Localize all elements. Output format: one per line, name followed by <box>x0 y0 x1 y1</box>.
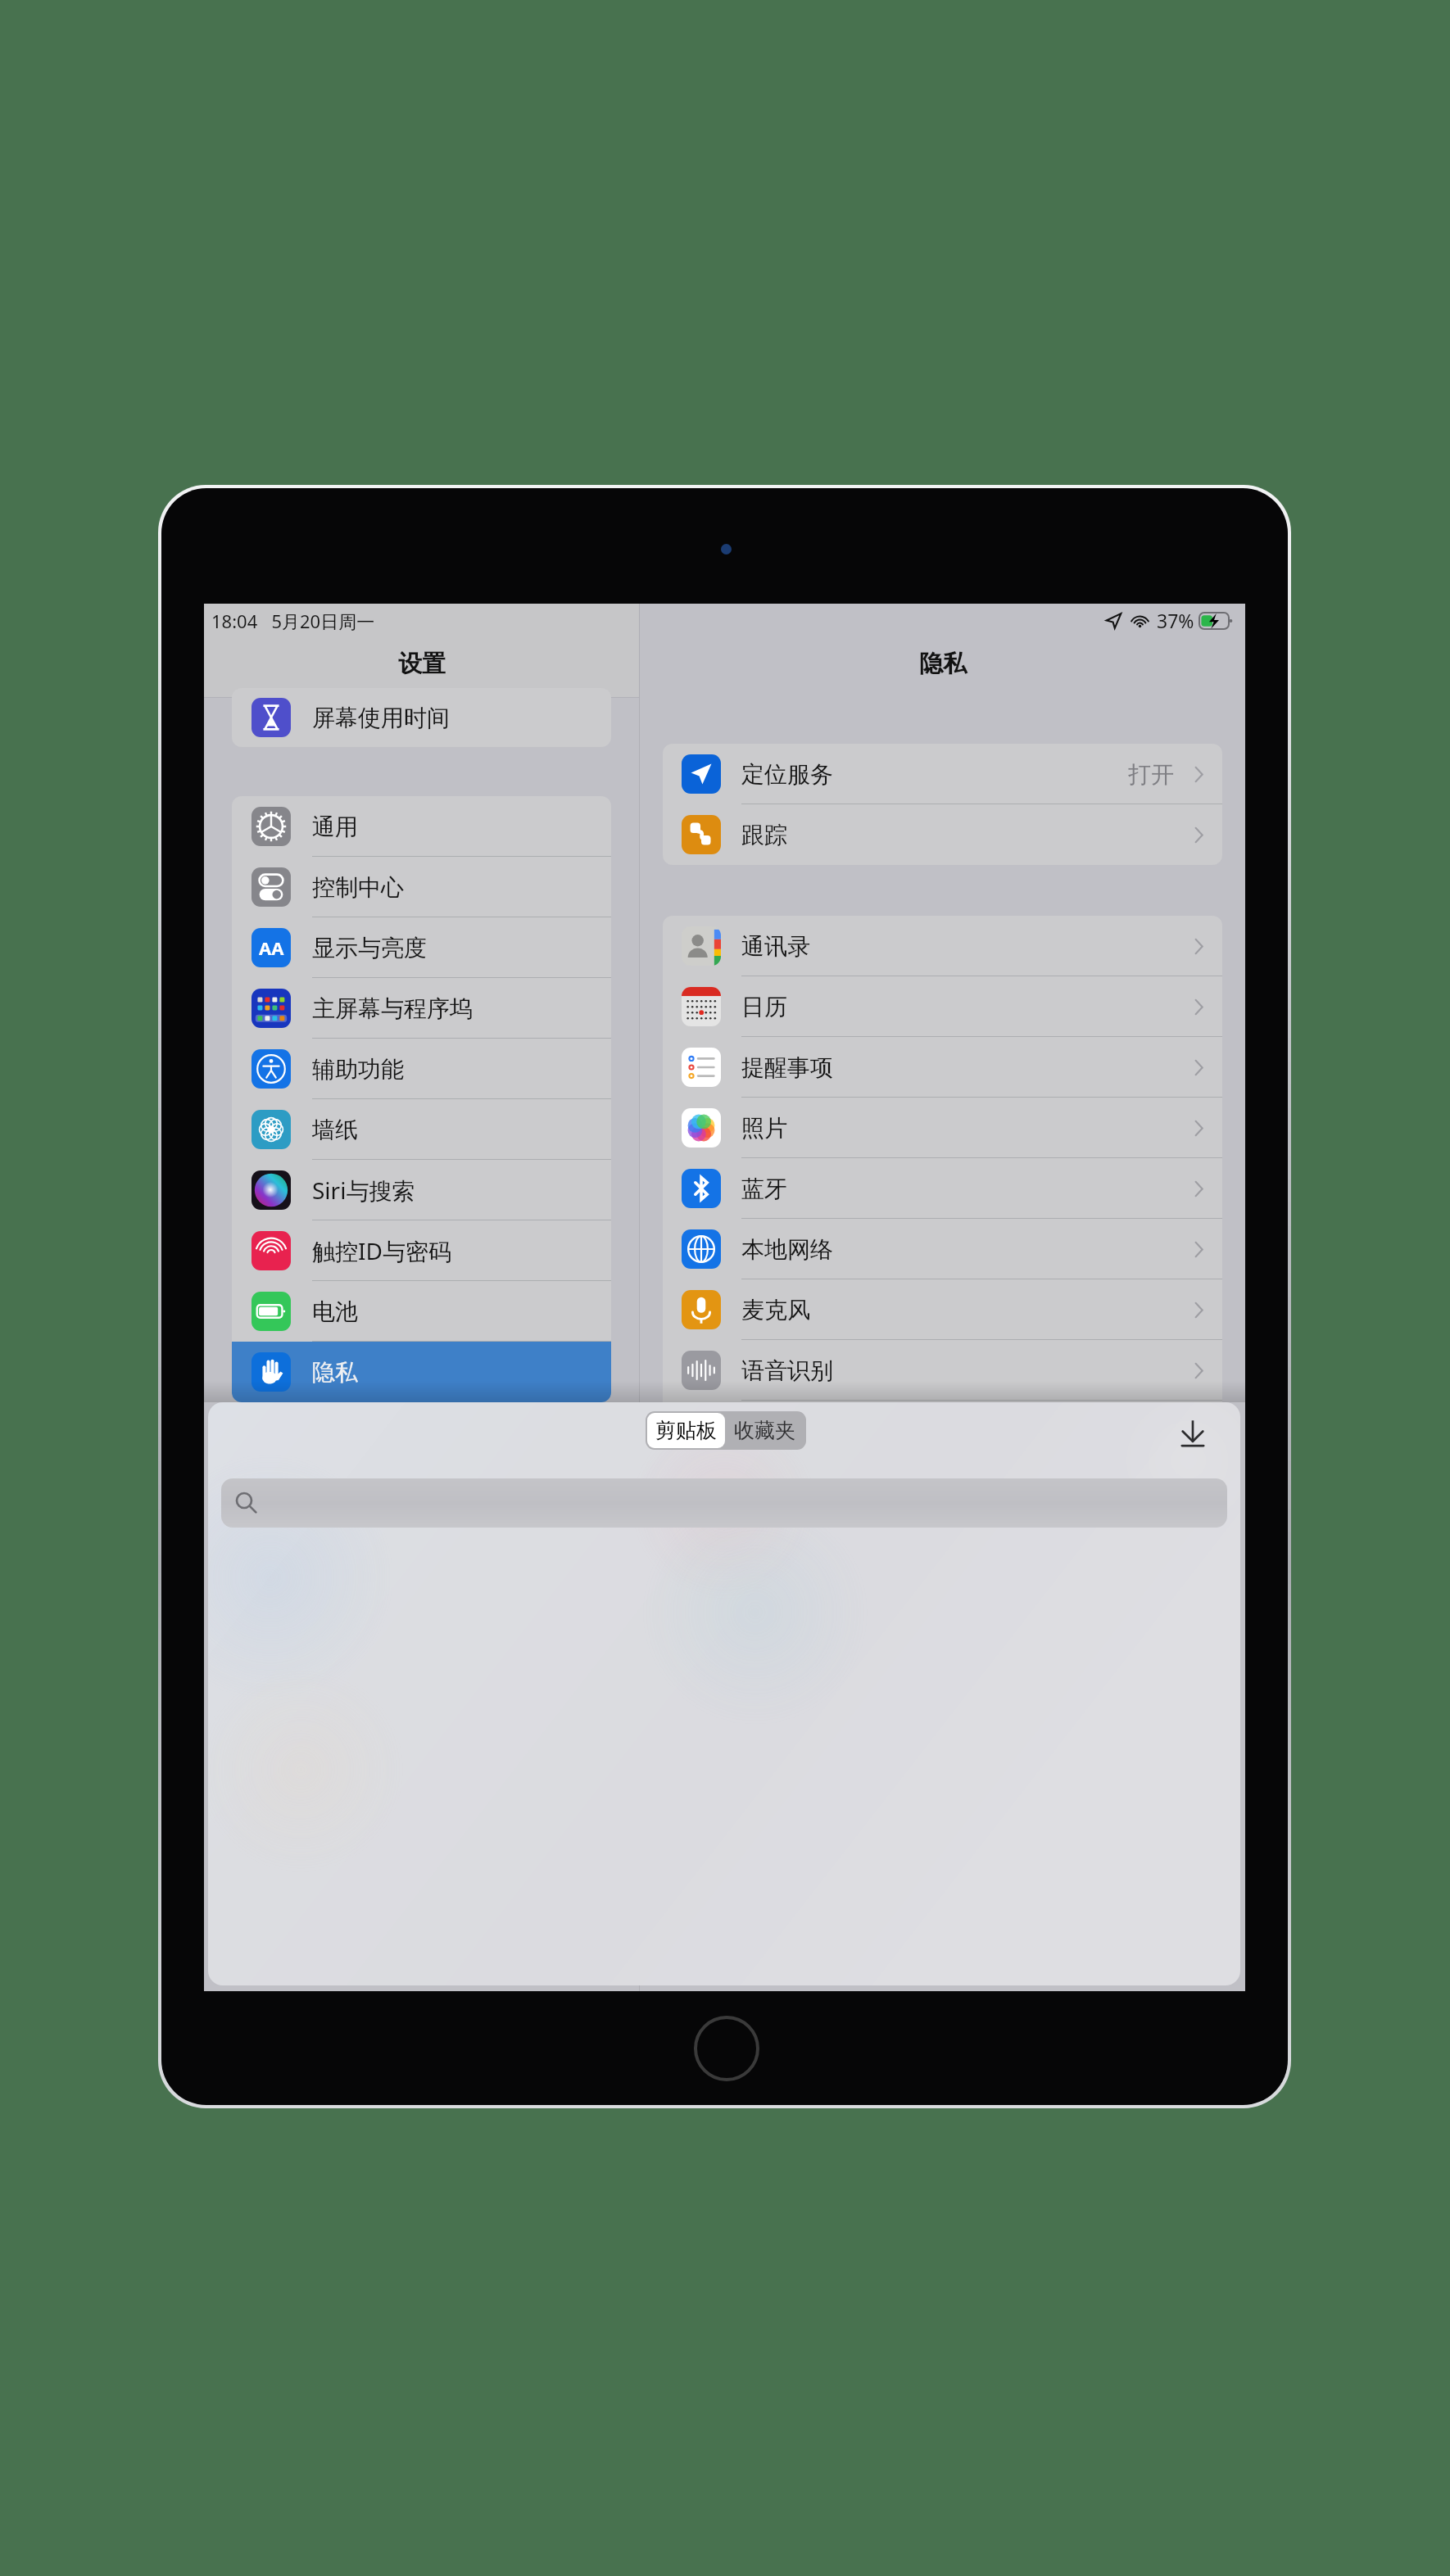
button[interactable]: 墙纸 <box>232 1099 611 1160</box>
staticText: 隐私 <box>919 649 967 679</box>
staticText: 运动与健身 <box>741 1417 856 1446</box>
staticText: 跟踪 <box>741 821 787 849</box>
staticText: 提醒事项 <box>741 1053 833 1082</box>
button[interactable]: 日历 <box>663 976 1222 1037</box>
button[interactable]: 语音识别 <box>663 1340 1222 1401</box>
staticText: 打开 <box>1128 760 1174 789</box>
button[interactable]: 通用 <box>232 796 611 857</box>
staticText: 通讯录 <box>741 932 810 961</box>
button[interactable]: 麦克风 <box>663 1279 1222 1340</box>
staticText: 隐私 <box>312 1358 358 1387</box>
button[interactable]: 电池 <box>232 1281 611 1342</box>
staticText: 日历 <box>741 993 787 1021</box>
button[interactable]: 辅助功能 <box>232 1039 611 1099</box>
button[interactable]: 主屏幕与程序坞 <box>232 978 611 1039</box>
button[interactable]: 照片 <box>663 1098 1222 1158</box>
staticText: 语音识别 <box>741 1356 833 1385</box>
button[interactable]: 收藏夹 <box>725 1413 804 1448</box>
staticText: 主屏幕与程序坞 <box>312 994 473 1023</box>
button[interactable]: Siri与搜索 <box>232 1160 611 1220</box>
staticText: 显示与亮度 <box>312 934 427 962</box>
button[interactable]: 跟踪 <box>663 804 1222 865</box>
button[interactable]: 控制中心 <box>232 857 611 917</box>
button[interactable]: AA <box>232 917 611 978</box>
button[interactable]: 运动与健身 <box>663 1401 1222 1461</box>
button[interactable]: 屏幕使用时间 <box>232 688 611 747</box>
staticText: 剪贴板 <box>655 1418 717 1443</box>
button[interactable]: 通讯录 <box>663 916 1222 976</box>
staticText: 收藏夹 <box>734 1418 795 1443</box>
button[interactable]: 隐私 <box>232 1342 611 1402</box>
button[interactable]: 本地网络 <box>663 1219 1222 1279</box>
button[interactable]: 剪贴板 <box>647 1413 725 1448</box>
staticText: 37% <box>1157 608 1194 633</box>
staticText: Siri与搜索 <box>312 1175 415 1206</box>
staticText: 蓝牙 <box>741 1175 787 1203</box>
staticText: 触控ID与密码 <box>312 1235 451 1266</box>
staticText: 电池 <box>312 1297 358 1326</box>
button[interactable]: 定位服务 <box>663 744 1222 804</box>
staticText: 辅助功能 <box>312 1055 404 1084</box>
staticText: 麦克风 <box>741 1296 810 1324</box>
button[interactable]: Search <box>221 1478 1227 1528</box>
staticText: 照片 <box>741 1114 787 1143</box>
staticText: 墙纸 <box>312 1116 358 1144</box>
button[interactable]: 分析与改进 <box>663 1461 1222 1522</box>
button[interactable]: 蓝牙 <box>663 1158 1222 1219</box>
button[interactable]: 提醒事项 <box>663 1037 1222 1098</box>
staticText: 18:04 5月20日周一 <box>211 609 375 633</box>
staticText: 控制中心 <box>312 873 404 902</box>
staticText: 分析与改进 <box>741 1478 856 1506</box>
staticText: 屏幕使用时间 <box>312 704 450 732</box>
button[interactable]: 触控ID与密码 <box>232 1220 611 1281</box>
staticText: 定位服务 <box>741 760 833 789</box>
staticText: 本地网络 <box>741 1235 833 1264</box>
button[interactable]: Download <box>1175 1416 1211 1452</box>
staticText: 设置 <box>398 649 446 679</box>
staticText: 通用 <box>312 813 358 841</box>
staticText: AA <box>259 935 284 960</box>
